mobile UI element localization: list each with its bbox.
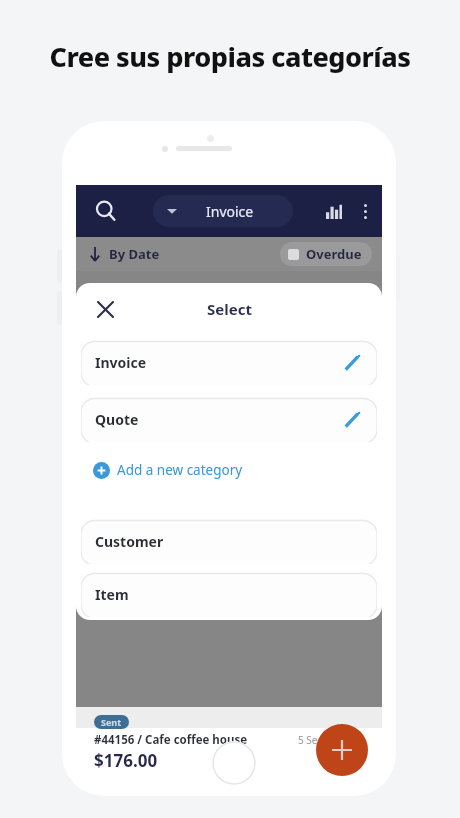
staticText: Overdue	[306, 245, 362, 263]
staticText: Add a new category	[117, 461, 243, 479]
staticText: #44156 / Cafe coffee house	[94, 732, 248, 748]
staticText: By Date	[109, 245, 160, 263]
button[interactable]: Home	[212, 741, 256, 785]
button[interactable]: Add	[316, 724, 368, 776]
staticText: Cree sus propias categorías	[0, 38, 460, 75]
button[interactable]: By Date	[88, 245, 160, 263]
button[interactable]: Overdue	[280, 242, 372, 266]
staticText: Sent	[101, 716, 122, 728]
button[interactable]: Invoice	[81, 340, 377, 385]
staticText: Quote	[95, 410, 139, 429]
staticText: $176.00	[94, 749, 158, 772]
button[interactable]: Edit Quote	[339, 407, 365, 433]
button[interactable]: Close	[86, 283, 124, 335]
button[interactable]: Search	[84, 185, 128, 237]
button[interactable]: Edit Invoice	[339, 350, 365, 376]
staticText: Invoice	[95, 353, 147, 372]
button[interactable]: Customer	[81, 519, 377, 564]
staticText: Item	[95, 585, 129, 604]
button[interactable]: Reports	[318, 185, 350, 237]
staticText: Invoice	[206, 202, 254, 221]
button[interactable]: More options	[350, 185, 380, 237]
staticText: 5 Se	[298, 733, 318, 747]
staticText: Customer	[95, 532, 164, 551]
button[interactable]: Add a new category	[88, 455, 248, 485]
button[interactable]: Item	[81, 572, 377, 617]
button[interactable]: Invoice	[153, 195, 293, 227]
staticText: Select	[207, 299, 252, 319]
button[interactable]: Quote	[81, 397, 377, 442]
